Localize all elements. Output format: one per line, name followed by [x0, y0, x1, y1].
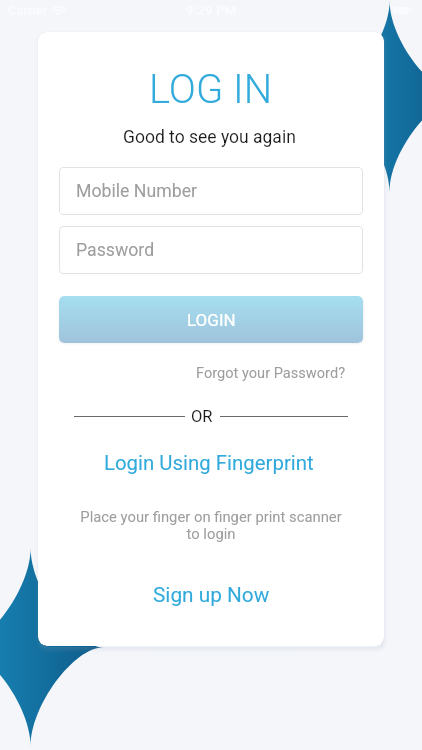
staticText: Place your finger on finger print scanne…: [76, 508, 346, 543]
staticText: Password: [76, 240, 155, 261]
staticText: LOG IN: [149, 66, 273, 113]
staticText: LOGIN: [187, 310, 236, 330]
button[interactable]: Sign up Now: [153, 583, 270, 607]
button[interactable]: Password: [59, 226, 363, 274]
staticText: Sign up Now: [153, 583, 270, 607]
button[interactable]: Login Using Fingerprint: [104, 451, 314, 475]
staticText: Good to see you again: [123, 127, 296, 148]
button[interactable]: Forgot your Password?: [196, 364, 346, 381]
staticText: OR: [191, 407, 213, 426]
staticText: Login Using Fingerprint: [104, 451, 314, 475]
staticText: Forgot your Password?: [196, 364, 346, 381]
staticText: Mobile Number: [76, 181, 198, 202]
button[interactable]: Mobile Number: [59, 167, 363, 215]
button[interactable]: LOGIN: [59, 296, 363, 343]
